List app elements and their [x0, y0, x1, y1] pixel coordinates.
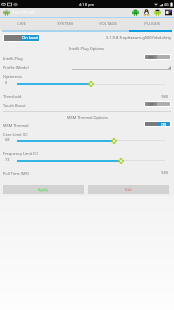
staticText: Intelli-Plug Options — [69, 46, 105, 51]
staticText: 3.1.9.8-Trophaeum-g5007ebd-dirty — [0, 35, 171, 40]
staticText: Poll Time (MS) — [3, 171, 29, 176]
button[interactable]: SYSTEM — [43, 18, 86, 30]
staticText: 0 — [5, 80, 8, 85]
staticText: Touch Boost — [3, 103, 26, 108]
button[interactable]: VOLTAGE — [86, 18, 130, 30]
staticText: LIVE — [17, 21, 26, 27]
staticText: Apply — [38, 187, 49, 192]
staticText: 4:18 pm — [79, 2, 95, 7]
button[interactable]: Slider — [111, 138, 117, 144]
button[interactable]: ON — [145, 122, 170, 126]
staticText: 580 — [0, 170, 168, 175]
button[interactable]: Slider — [88, 81, 94, 87]
staticText: 4G — [164, 2, 169, 7]
staticText: Frequency Limit (C) — [3, 151, 38, 156]
button[interactable]: App home — [3, 9, 35, 16]
staticText: Exit — [125, 187, 132, 192]
staticText: MSM Thermal — [3, 123, 29, 128]
staticText: PLUGIN — [144, 21, 160, 27]
staticText: Core Limit (C) — [3, 132, 28, 137]
staticText: OFF — [148, 102, 154, 106]
button[interactable]: OFF — [145, 55, 170, 59]
staticText: MSM Thermal Options — [67, 115, 108, 120]
staticText: 73 — [5, 157, 10, 162]
staticText: SYSTEM — [57, 21, 73, 27]
staticText: 980 — [0, 94, 168, 99]
button[interactable]: PLUGIN — [130, 18, 174, 30]
button[interactable]: On boot — [4, 35, 39, 41]
staticText: 68 — [5, 137, 10, 142]
button[interactable]: Intelli-Plug — [130, 8, 141, 17]
button[interactable]: Exit — [88, 185, 169, 194]
staticText: ON — [161, 122, 167, 126]
button[interactable]: Apply — [3, 185, 84, 194]
staticText: Hysteresis — [3, 74, 22, 79]
staticText: Sacrificed — [12, 9, 35, 16]
staticText: VOLTAGE — [99, 21, 117, 27]
staticText: OFF — [148, 55, 154, 59]
button[interactable]: LIVE — [0, 18, 43, 30]
staticText: Profile (Mode) — [3, 65, 29, 70]
button[interactable]: Slider — [118, 158, 124, 164]
button[interactable]: System info — [152, 8, 163, 17]
staticText: Intelli-Plug — [3, 56, 23, 61]
button[interactable]: Screenshot — [163, 8, 174, 17]
button[interactable]: Profile mode — [72, 63, 171, 70]
staticText: On boot — [22, 35, 39, 41]
button[interactable]: OFF — [145, 102, 170, 106]
staticText: Threshold — [3, 94, 22, 99]
button[interactable]: Kernel info — [141, 8, 152, 17]
